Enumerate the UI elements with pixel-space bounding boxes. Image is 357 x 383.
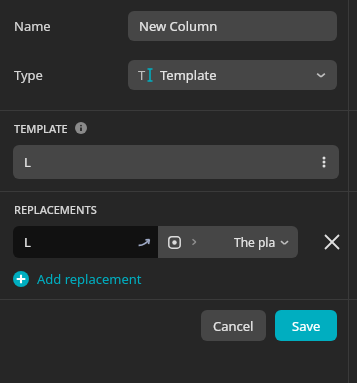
staticText: The pla: [234, 234, 276, 250]
other: Source: [168, 236, 181, 249]
button[interactable]: Save: [275, 310, 337, 341]
button[interactable]: Remove replacement: [319, 229, 345, 255]
staticText: REPLACEMENTS: [14, 202, 97, 217]
staticText: Template: [160, 66, 217, 84]
other: Info: [75, 122, 87, 134]
staticText: Cancel: [213, 317, 254, 335]
staticText: L: [24, 153, 31, 171]
button[interactable]: New Column: [128, 11, 337, 41]
staticText: Add replacement: [37, 270, 142, 288]
staticText: Save: [292, 317, 321, 335]
staticText: L: [24, 233, 31, 251]
staticText: Name: [14, 17, 51, 35]
button[interactable]: Source: [158, 226, 298, 258]
button[interactable]: L: [13, 226, 158, 258]
button[interactable]: Add replacement: [13, 266, 148, 292]
button[interactable]: L: [13, 145, 339, 179]
staticText: T: [138, 66, 146, 84]
button[interactable]: T: [128, 60, 337, 90]
button[interactable]: Cancel: [201, 310, 266, 341]
other: More options: [317, 155, 331, 169]
staticText: Type: [14, 66, 43, 84]
staticText: TEMPLATE: [14, 121, 68, 136]
staticText: New Column: [139, 17, 218, 35]
